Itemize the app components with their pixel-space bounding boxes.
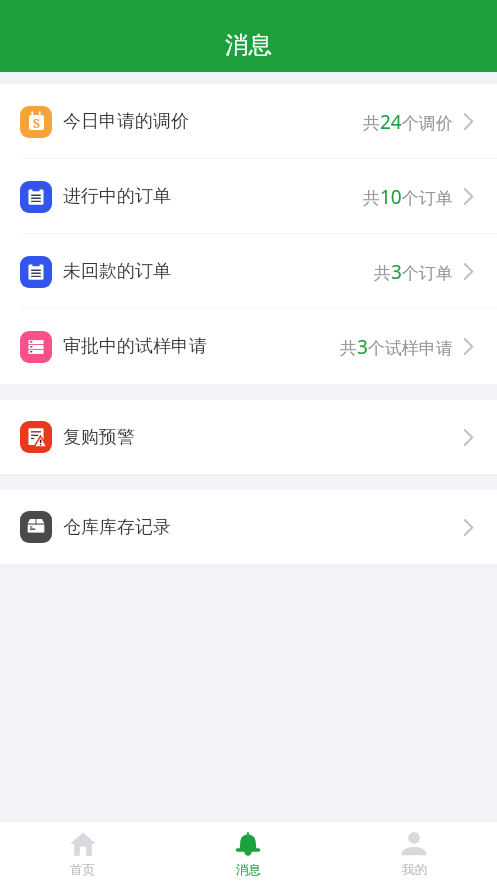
button[interactable]: 我的 bbox=[331, 822, 497, 883]
other: 首页 bbox=[70, 831, 96, 857]
other: 我的 bbox=[401, 831, 427, 857]
button[interactable]: 消息 bbox=[165, 822, 331, 883]
staticText: 复购预警 bbox=[63, 426, 135, 449]
staticText: 今日申请的调价 bbox=[63, 110, 189, 133]
staticText: 共24个调价 bbox=[363, 109, 453, 135]
staticText: 进行中的订单 bbox=[63, 185, 171, 208]
other: Open 今日申请的调价 bbox=[464, 113, 473, 130]
button[interactable]: 审批中的试样申请 bbox=[0, 309, 497, 384]
other: Open 审批中的试样申请 bbox=[464, 338, 473, 355]
staticText: 未回款的订单 bbox=[63, 260, 171, 283]
staticText: 共10个订单 bbox=[363, 184, 453, 210]
button[interactable]: 仓库库存记录 bbox=[0, 490, 497, 564]
staticText: 共3个订单 bbox=[374, 259, 453, 285]
other: 消息 bbox=[235, 831, 261, 857]
other: Open 复购预警 bbox=[464, 429, 473, 446]
staticText: 消息 bbox=[236, 862, 261, 876]
staticText: 消息 bbox=[225, 30, 272, 60]
button[interactable]: 首页 bbox=[0, 822, 165, 883]
button[interactable]: S bbox=[0, 84, 497, 159]
staticText: S bbox=[33, 115, 40, 130]
staticText: 审批中的试样申请 bbox=[63, 335, 207, 358]
button[interactable]: 复购预警 bbox=[0, 400, 497, 474]
button[interactable]: 未回款的订单 bbox=[0, 234, 497, 309]
other: Open 未回款的订单 bbox=[464, 263, 473, 280]
staticText: 首页 bbox=[70, 862, 95, 876]
other: Open 仓库库存记录 bbox=[464, 519, 473, 536]
staticText: 共3个试样申请 bbox=[340, 334, 453, 360]
other: Open 进行中的订单 bbox=[464, 188, 473, 205]
staticText: 仓库库存记录 bbox=[63, 516, 171, 539]
staticText: 我的 bbox=[402, 862, 427, 876]
button[interactable]: 进行中的订单 bbox=[0, 159, 497, 234]
